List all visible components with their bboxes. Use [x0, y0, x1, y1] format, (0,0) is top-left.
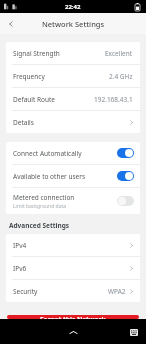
button[interactable]: Frequency	[6, 65, 140, 87]
staticText: Details	[13, 118, 129, 127]
button[interactable]: Metered connection	[6, 188, 140, 214]
button[interactable]: Available to other users	[6, 165, 140, 187]
staticText: Forget this Network	[40, 315, 106, 319]
button[interactable]: IPv4	[6, 234, 140, 256]
button[interactable]: Home	[63, 322, 83, 342]
button[interactable]: Details	[6, 111, 140, 133]
staticText: WPA2	[108, 287, 126, 296]
staticText: Connect Automatically	[13, 149, 82, 158]
staticText: IPv4	[13, 241, 129, 250]
staticText: Default Route	[13, 95, 56, 104]
staticText: 192.168.43.1	[94, 95, 133, 104]
staticText: Available to other users	[13, 172, 86, 181]
staticText: 2.4 GHz	[109, 72, 133, 81]
button[interactable]: Forget this Network	[7, 315, 139, 319]
button[interactable]: Keyboard	[126, 324, 142, 340]
button[interactable]: Signal Strength	[6, 42, 140, 64]
button[interactable]: Switch on	[117, 171, 134, 181]
button[interactable]: Switch on	[117, 148, 134, 158]
staticText: Limit background data	[13, 203, 67, 210]
button[interactable]: Back	[3, 16, 19, 32]
button[interactable]: Security	[6, 280, 140, 302]
staticText: Network Settings	[42, 19, 105, 29]
staticText: Frequency	[13, 72, 45, 81]
staticText: Excellent	[105, 49, 133, 58]
button[interactable]: Connect Automatically	[6, 142, 140, 164]
button[interactable]: Default Route	[6, 88, 140, 110]
button[interactable]: Switch off	[117, 196, 134, 206]
button[interactable]: IPv6	[6, 257, 140, 279]
staticText: Security	[13, 287, 108, 296]
staticText: Advanced Settings	[9, 221, 70, 230]
staticText: Signal Strength	[13, 49, 60, 58]
staticText: IPv6	[13, 264, 129, 273]
staticText: Metered connection	[13, 193, 75, 202]
staticText: 22:42	[65, 3, 81, 11]
